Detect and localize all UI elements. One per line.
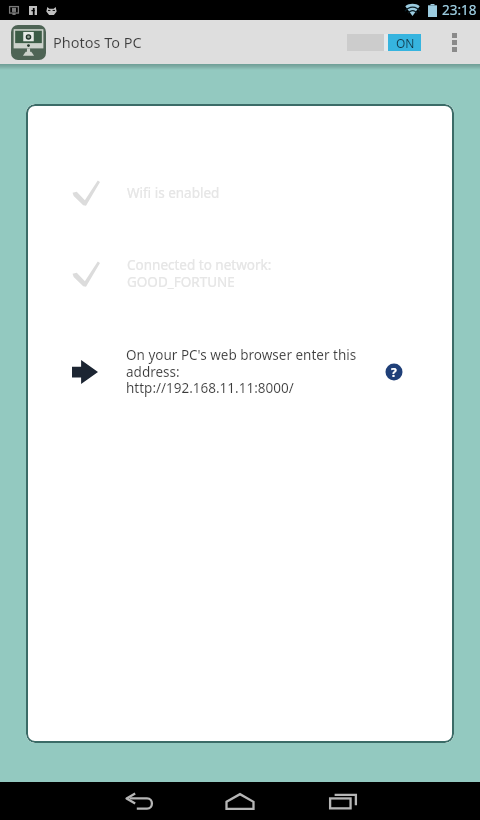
staticText: ? xyxy=(391,364,397,380)
button[interactable]: Home xyxy=(207,782,273,820)
staticText: 23:18 xyxy=(442,1,477,19)
staticText: On your PC's web browser enter this addr… xyxy=(126,346,358,397)
button[interactable]: Server toggle xyxy=(347,34,421,51)
staticText: ON xyxy=(396,35,415,51)
button[interactable]: Help xyxy=(385,363,403,381)
staticText: Wifi is enabled xyxy=(127,184,220,202)
button[interactable]: More options xyxy=(442,20,466,64)
button[interactable]: Recents xyxy=(310,782,376,820)
staticText: Connected to network: GOOD_FORTUNE xyxy=(127,256,272,291)
button[interactable]: App icon xyxy=(11,25,46,60)
staticText: Photos To PC xyxy=(53,32,142,52)
button[interactable]: Back xyxy=(106,782,172,820)
